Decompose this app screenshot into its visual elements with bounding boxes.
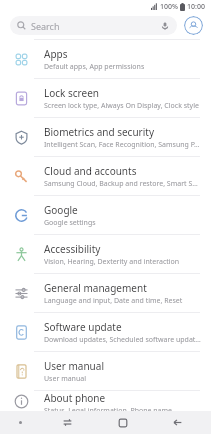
staticText: Biometrics and security: [44, 125, 154, 139]
button[interactable]: Recents: [40, 411, 95, 434]
staticText: User manual: [44, 374, 86, 384]
staticText: Default apps, App permissions: [44, 62, 145, 72]
staticText: About phone: [44, 391, 106, 405]
button[interactable]: Accessibility: [0, 235, 211, 273]
staticText: 10:00: [187, 2, 205, 12]
staticText: Software update: [44, 320, 122, 334]
button[interactable]: Lock screen: [0, 79, 211, 117]
staticText: Vision, Hearing, Dexterity and interacti…: [44, 257, 180, 267]
button[interactable]: Back: [150, 411, 205, 434]
staticText: Apps: [44, 47, 68, 61]
button[interactable]: User manual: [0, 352, 211, 390]
button[interactable]: Account: [184, 16, 203, 35]
staticText: Google settings: [44, 218, 96, 228]
button[interactable]: Biometrics and security: [0, 118, 211, 156]
staticText: Cloud and accounts: [44, 164, 137, 178]
staticText: Search: [31, 20, 60, 32]
button[interactable]: Apps: [0, 40, 211, 78]
button[interactable]: Keyboard indicator: [0, 411, 40, 434]
staticText: Status, Legal information, Phone name: [44, 406, 173, 411]
staticText: Google: [44, 203, 78, 217]
button[interactable]: Google: [0, 196, 211, 234]
button[interactable]: Search: [10, 16, 177, 35]
button[interactable]: Voice search: [159, 20, 170, 31]
button[interactable]: Software update: [0, 313, 211, 351]
staticText: User manual: [44, 359, 104, 373]
staticText: Intelligent Scan, Face Recognition, Sams…: [44, 140, 200, 150]
staticText: Download updates, Scheduled software upd…: [44, 335, 201, 345]
button[interactable]: Home: [95, 411, 150, 434]
staticText: Lock screen: [44, 86, 100, 100]
button[interactable]: General management: [0, 274, 211, 312]
button[interactable]: Cloud and accounts: [0, 157, 211, 195]
staticText: 100%: [160, 2, 178, 12]
staticText: Language and input, Date and time, Reset: [44, 296, 183, 306]
staticText: Samsung Cloud, Backup and restore, Smart…: [44, 179, 201, 189]
staticText: Accessibility: [44, 242, 101, 256]
staticText: Screen lock type, Always On Display, Clo…: [44, 101, 199, 111]
button[interactable]: About phone: [0, 391, 211, 411]
staticText: General management: [44, 281, 147, 295]
